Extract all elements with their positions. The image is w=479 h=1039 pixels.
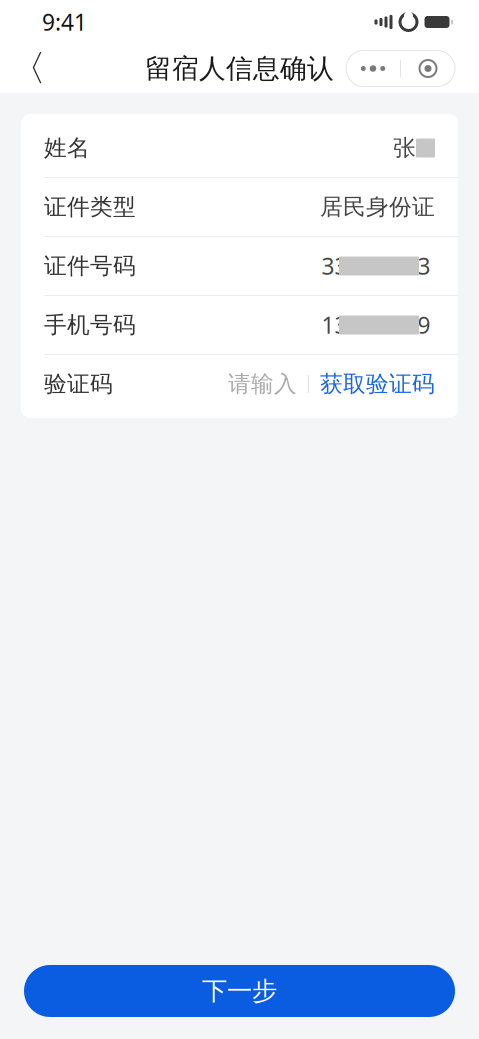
staticText: 留宿人信息确认 xyxy=(145,52,334,85)
staticText: 姓名 xyxy=(44,134,90,162)
staticText: 手机号码 xyxy=(44,311,136,339)
button[interactable]: 获取验证码 xyxy=(320,370,435,398)
button[interactable]: 更多 xyxy=(346,50,400,86)
staticText: 请输入 xyxy=(228,370,297,398)
staticText: 下一步 xyxy=(202,975,277,1006)
staticText: 证件号码 xyxy=(44,252,136,280)
button[interactable]: 关闭 xyxy=(401,50,455,86)
staticText: 33 xyxy=(321,251,347,281)
staticText: 证件类型 xyxy=(44,193,136,221)
staticText: 13 xyxy=(321,310,347,340)
staticText: 张 xyxy=(393,134,416,162)
staticText: 〈 xyxy=(10,46,46,91)
staticText: 居民身份证 xyxy=(320,193,435,221)
staticText: 9 xyxy=(417,310,430,340)
staticText: 获取验证码 xyxy=(320,370,435,398)
button[interactable]: 返回 xyxy=(0,44,56,93)
staticText: 验证码 xyxy=(44,370,113,398)
staticText: 9:41 xyxy=(42,7,87,37)
button[interactable]: 下一步 xyxy=(24,965,455,1017)
staticText: 3 xyxy=(417,251,430,281)
